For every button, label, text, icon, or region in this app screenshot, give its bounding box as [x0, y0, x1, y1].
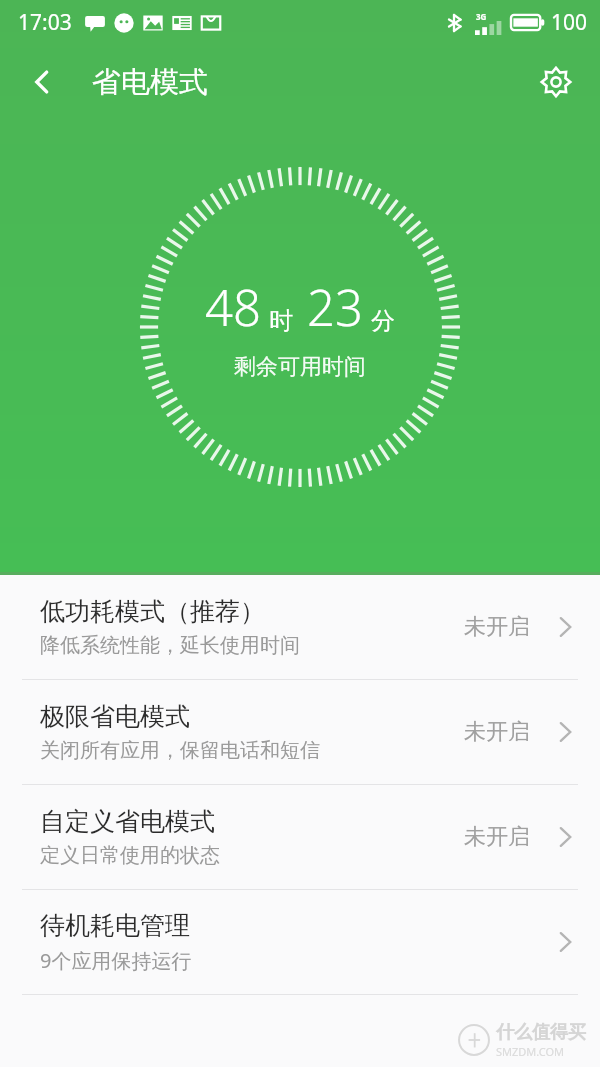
- staticText: 待机耗电管理: [40, 910, 190, 941]
- staticText: 17:03: [18, 8, 72, 37]
- staticText: 未开启: [464, 718, 530, 746]
- button[interactable]: 低功耗模式（推荐）: [0, 575, 600, 679]
- staticText: 低功耗模式（推荐）: [40, 596, 265, 627]
- staticText: 3G: [476, 11, 487, 22]
- staticText: 23: [307, 274, 363, 341]
- button[interactable]: Back: [14, 54, 70, 110]
- staticText: 100: [551, 8, 588, 37]
- staticText: 省电模式: [92, 64, 208, 101]
- staticText: 未开启: [464, 823, 530, 851]
- button[interactable]: Settings: [528, 54, 584, 110]
- staticText: 剩余可用时间: [234, 353, 366, 381]
- staticText: 48: [205, 274, 261, 341]
- button[interactable]: 自定义省电模式: [0, 785, 600, 889]
- staticText: 未开启: [464, 613, 530, 641]
- staticText: 9个应用保持运行: [40, 947, 192, 974]
- staticText: 关闭所有应用，保留电话和短信: [40, 738, 320, 763]
- button[interactable]: 待机耗电管理: [0, 890, 600, 994]
- staticText: 降低系统性能，延长使用时间: [40, 633, 300, 658]
- staticText: 什么值得买: [496, 1021, 586, 1044]
- button[interactable]: 极限省电模式: [0, 680, 600, 784]
- staticText: 定义日常使用的状态: [40, 843, 220, 868]
- staticText: 时: [269, 306, 293, 336]
- staticText: 自定义省电模式: [40, 806, 215, 837]
- staticText: SMZDM.COM: [496, 1044, 565, 1059]
- staticText: 极限省电模式: [40, 701, 190, 732]
- staticText: 分: [371, 306, 395, 336]
